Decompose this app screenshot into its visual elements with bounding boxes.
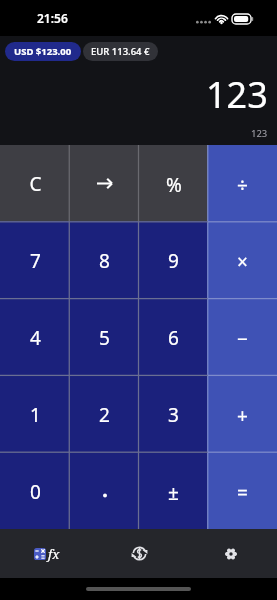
button[interactable]: Currency converter xyxy=(93,529,185,578)
button[interactable]: = xyxy=(208,452,277,529)
other: Backspace xyxy=(97,178,112,189)
staticText: 21:56 xyxy=(37,10,68,26)
button[interactable]: Calculator xyxy=(0,529,93,578)
staticText: 7 xyxy=(30,248,41,274)
button[interactable]: 1 xyxy=(0,375,70,452)
button[interactable]: ÷ xyxy=(208,145,277,221)
button[interactable]: × xyxy=(208,221,277,298)
staticText: − xyxy=(237,326,248,352)
button[interactable]: + xyxy=(208,375,277,452)
button[interactable] xyxy=(70,452,139,529)
staticText: ± xyxy=(168,480,179,506)
staticText: 4 xyxy=(30,325,41,351)
staticText: = xyxy=(237,480,248,506)
staticText: 123 xyxy=(206,70,268,119)
staticText: C xyxy=(29,171,42,197)
staticText: 123 xyxy=(251,127,268,140)
button[interactable]: 6 xyxy=(139,298,208,375)
staticText: EUR 113.64 € xyxy=(91,45,150,58)
staticText: USD $123.00 xyxy=(14,45,72,58)
button[interactable]: 5 xyxy=(70,298,139,375)
staticText: ÷ xyxy=(237,172,248,198)
staticText: 5 xyxy=(99,325,110,351)
staticText: 6 xyxy=(168,325,179,351)
staticText: 8 xyxy=(99,248,110,274)
staticText: fx xyxy=(48,545,60,563)
staticText: 1 xyxy=(30,402,41,428)
staticText: 9 xyxy=(168,248,179,274)
staticText: 0 xyxy=(30,479,41,505)
staticText: 3 xyxy=(168,402,179,428)
button[interactable]: % xyxy=(139,145,208,221)
button[interactable]: ± xyxy=(139,452,208,529)
button[interactable]: C xyxy=(0,145,70,221)
button[interactable]: Settings xyxy=(185,529,277,578)
button[interactable]: 8 xyxy=(70,221,139,298)
button[interactable]: Backspace xyxy=(70,145,139,221)
button[interactable]: 4 xyxy=(0,298,70,375)
button[interactable]: 9 xyxy=(139,221,208,298)
button[interactable]: 7 xyxy=(0,221,70,298)
button[interactable]: − xyxy=(208,298,277,375)
staticText: + xyxy=(237,403,248,429)
button[interactable]: 0 xyxy=(0,452,70,529)
staticText: 2 xyxy=(99,402,110,428)
button[interactable]: 3 xyxy=(139,375,208,452)
staticText: × xyxy=(237,249,248,275)
button[interactable]: EUR 113.64 € xyxy=(83,42,158,61)
button[interactable]: 2 xyxy=(70,375,139,452)
button[interactable]: USD $123.00 xyxy=(5,42,81,61)
staticText: % xyxy=(166,172,182,198)
